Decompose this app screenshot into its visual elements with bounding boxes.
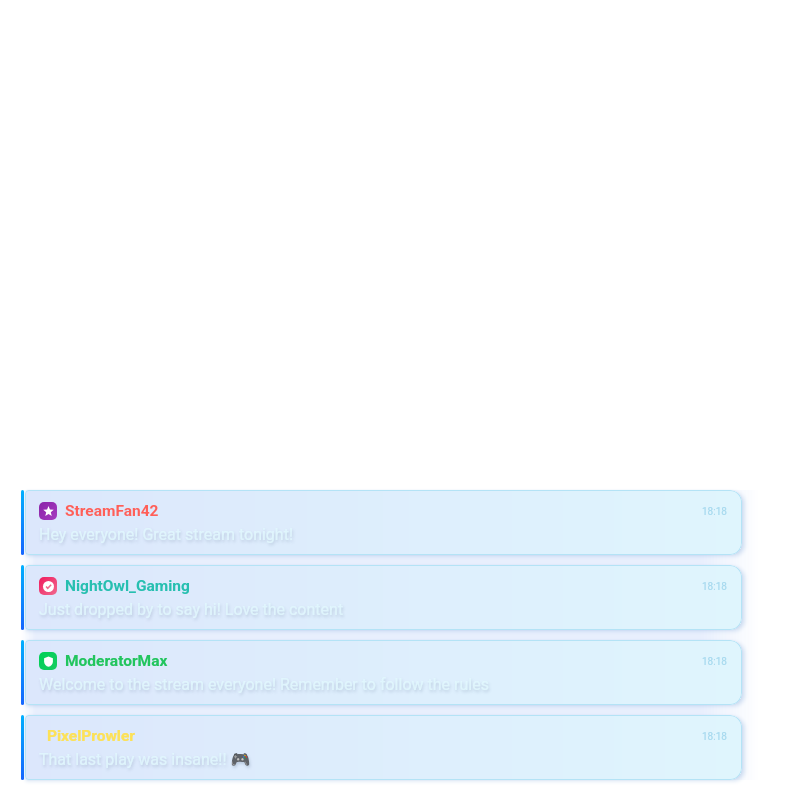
other: Verified: [39, 577, 57, 595]
staticText: 18:18: [702, 656, 727, 668]
staticText: 18:18: [702, 506, 727, 518]
button[interactable]: Moderator: [21, 640, 742, 705]
other: Moderator: [39, 652, 57, 670]
staticText: ModeratorMax: [65, 652, 168, 670]
button[interactable]: Verified: [21, 565, 742, 630]
staticText: Welcome to the stream everyone! Remember…: [39, 675, 489, 694]
staticText: 18:18: [702, 731, 727, 743]
staticText: Hey everyone! Great stream tonight!: [39, 525, 294, 544]
other: Subscriber: [39, 502, 57, 520]
button[interactable]: PixelProwler: [21, 715, 742, 780]
staticText: Just dropped by to say hi! Love the cont…: [39, 600, 344, 619]
staticText: 18:18: [702, 581, 727, 593]
staticText: StreamFan42: [65, 502, 159, 520]
staticText: That last play was insane!! 🎮: [39, 750, 251, 769]
button[interactable]: Subscriber: [21, 490, 742, 555]
staticText: PixelProwler: [47, 727, 136, 745]
staticText: NightOwl_Gaming: [65, 577, 190, 595]
